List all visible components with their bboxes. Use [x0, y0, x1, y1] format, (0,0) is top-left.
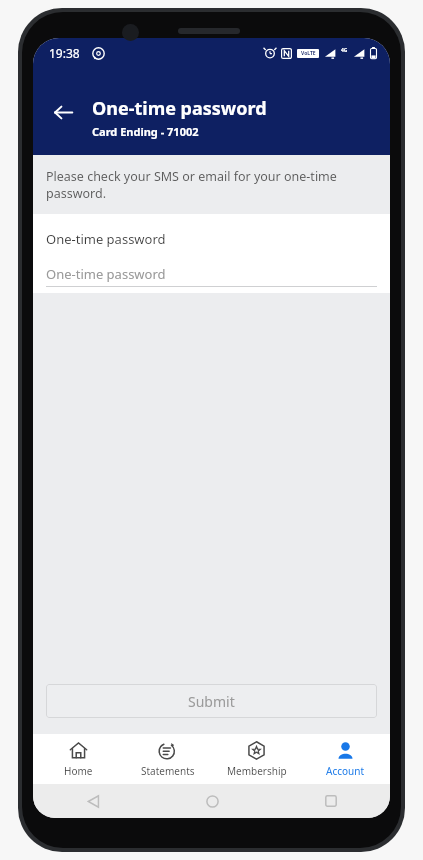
button[interactable]: One-time password	[46, 261, 377, 287]
staticText: One-time password	[46, 265, 166, 283]
button[interactable]: Account	[301, 734, 390, 784]
button[interactable]: Membership	[212, 734, 301, 784]
button[interactable]: Home	[195, 784, 229, 818]
staticText: Home	[64, 764, 93, 778]
button[interactable]: Back	[41, 90, 85, 134]
button[interactable]: Back	[76, 784, 110, 818]
staticText: One-time password	[92, 96, 267, 121]
staticText: 19:38	[49, 45, 80, 61]
staticText: Please check your SMS or email for your …	[46, 168, 380, 202]
button[interactable]: Submit	[46, 684, 377, 718]
staticText: Submit	[188, 692, 235, 711]
staticText: Card Ending - 71002	[92, 124, 199, 139]
staticText: Statements	[141, 764, 195, 778]
staticText: 4G	[341, 47, 348, 54]
staticText: Account	[326, 764, 365, 778]
button[interactable]: Statements	[123, 734, 212, 784]
button[interactable]: Home	[33, 734, 123, 784]
button[interactable]: Recent apps	[314, 784, 348, 818]
staticText: VoLTE	[301, 50, 316, 57]
staticText: One-time password	[46, 230, 166, 248]
staticText: Membership	[227, 764, 287, 778]
